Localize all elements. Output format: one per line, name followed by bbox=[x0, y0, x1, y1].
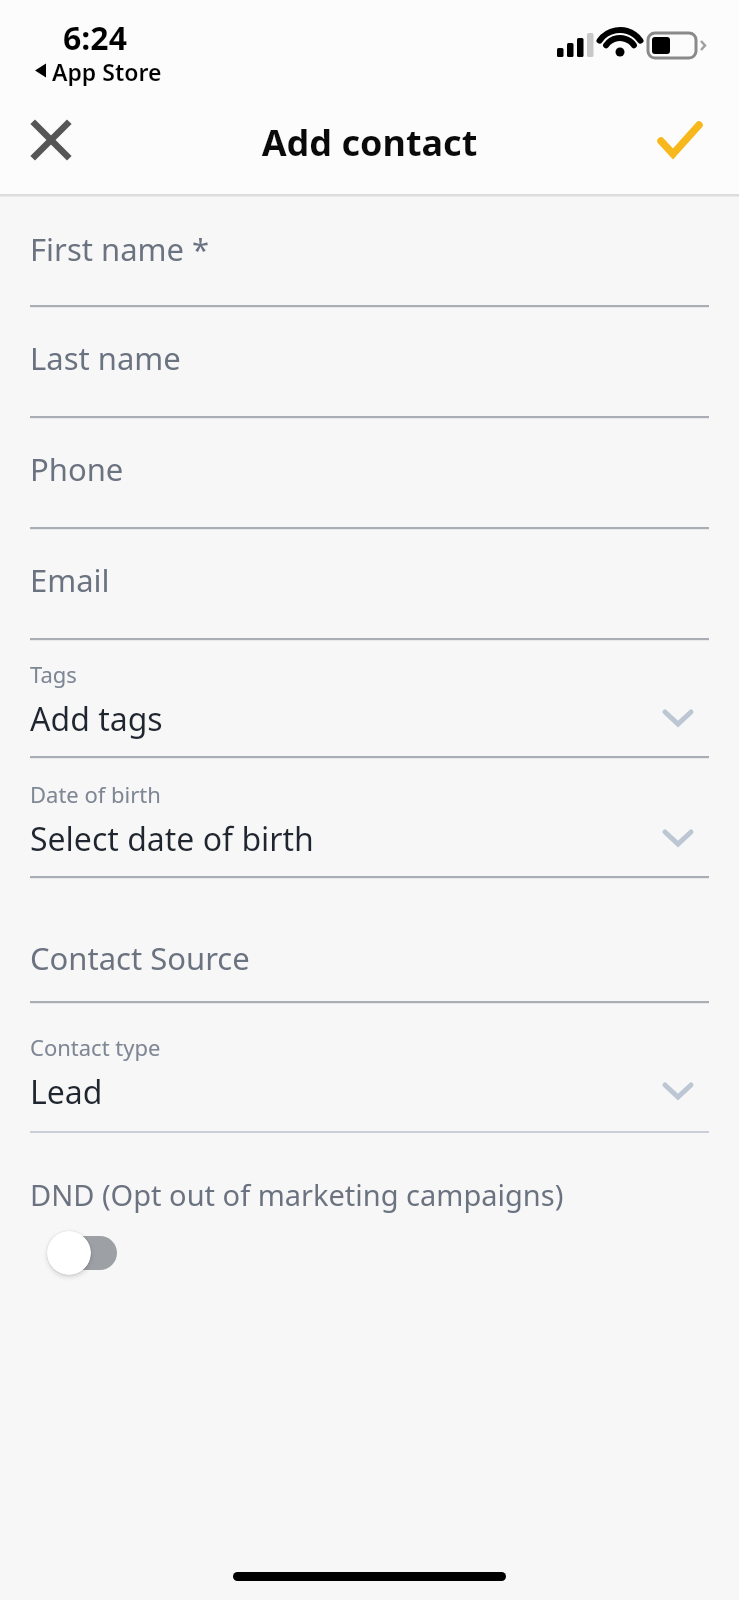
button[interactable]: Tags bbox=[0, 641, 739, 756]
button[interactable]: Email bbox=[0, 530, 739, 638]
button[interactable]: Last name bbox=[0, 308, 739, 416]
staticText: Email bbox=[30, 559, 110, 601]
staticText: Contact Source bbox=[30, 937, 250, 979]
button[interactable]: Save contact bbox=[648, 108, 712, 172]
button[interactable]: DND toggle, off bbox=[47, 1231, 119, 1275]
staticText: Phone bbox=[30, 448, 124, 490]
button[interactable]: Contact type bbox=[0, 1004, 739, 1131]
button[interactable]: Date of birth bbox=[0, 759, 739, 876]
staticText: Add tags bbox=[30, 697, 163, 741]
staticText: Select date of birth bbox=[30, 817, 314, 861]
staticText: App Store bbox=[52, 56, 162, 86]
staticText: Lead bbox=[30, 1070, 103, 1114]
staticText: Contact type bbox=[30, 1032, 161, 1062]
button[interactable]: First name * bbox=[0, 200, 739, 306]
button[interactable]: App Store bbox=[22, 56, 162, 86]
button[interactable]: Contact Source bbox=[0, 880, 739, 1001]
staticText: First name * bbox=[30, 228, 210, 270]
staticText: Last name bbox=[30, 337, 181, 379]
button[interactable]: Close bbox=[18, 107, 84, 173]
staticText: Add contact bbox=[0, 118, 739, 164]
button[interactable]: Phone bbox=[0, 419, 739, 527]
staticText: Date of birth bbox=[30, 779, 161, 809]
staticText: 6:24 bbox=[0, 16, 190, 56]
staticText: Tags bbox=[30, 659, 77, 689]
staticText: DND (Opt out of marketing campaigns) bbox=[30, 1175, 564, 1214]
